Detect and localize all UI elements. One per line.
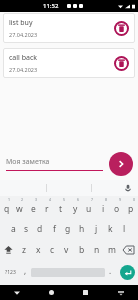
- button[interactable]: Save note: [109, 152, 133, 176]
- staticText: ,: [24, 265, 27, 276]
- button[interactable]: Hide keyboard: [103, 285, 138, 300]
- staticText: l: [123, 223, 126, 235]
- staticText: 8: [105, 197, 108, 202]
- button[interactable]: b: [74, 239, 89, 260]
- button[interactable]: x: [31, 239, 45, 260]
- staticText: Моя заметка: [6, 157, 50, 167]
- button[interactable]: l: [117, 218, 131, 239]
- staticText: 4: [49, 197, 52, 202]
- button[interactable]: Enter: [120, 265, 135, 280]
- button[interactable]: 9: [110, 196, 124, 218]
- button[interactable]: Voice input: [123, 183, 133, 193]
- staticText: r: [45, 203, 49, 215]
- button[interactable]: call back: [3, 48, 135, 78]
- staticText: e: [31, 203, 36, 215]
- staticText: b: [79, 244, 85, 256]
- button[interactable]: Home: [34, 285, 68, 300]
- staticText: 1: [8, 197, 11, 202]
- staticText: 9: [119, 197, 122, 202]
- staticText: p: [128, 203, 134, 215]
- staticText: w: [16, 203, 23, 215]
- staticText: h: [79, 223, 85, 235]
- staticText: y: [73, 203, 78, 215]
- button[interactable]: 6: [68, 196, 82, 218]
- button[interactable]: j: [89, 218, 103, 239]
- staticText: z: [22, 244, 26, 256]
- staticText: 0: [133, 197, 136, 202]
- button[interactable]: 8: [96, 196, 110, 218]
- button[interactable]: n: [89, 239, 104, 260]
- button[interactable]: list buy: [3, 13, 135, 43]
- staticText: k: [108, 223, 113, 235]
- button[interactable]: 0: [124, 196, 138, 218]
- staticText: 7: [91, 197, 94, 202]
- staticText: j: [95, 223, 98, 235]
- staticText: 27.04.2023: [9, 66, 38, 73]
- button[interactable]: z: [17, 239, 31, 260]
- button[interactable]: ,: [20, 260, 31, 285]
- button[interactable]: h: [75, 218, 89, 239]
- button[interactable]: a: [7, 218, 20, 239]
- button[interactable]: k: [103, 218, 117, 239]
- button[interactable]: Backspace: [119, 239, 138, 260]
- staticText: o: [114, 203, 120, 215]
- staticText: a: [11, 223, 16, 235]
- button[interactable]: 4: [40, 196, 54, 218]
- button[interactable]: 3: [26, 196, 40, 218]
- staticText: c: [50, 244, 55, 256]
- staticText: 11:52: [43, 2, 59, 10]
- staticText: list buy: [9, 18, 33, 28]
- button[interactable]: .: [105, 260, 116, 285]
- staticText: n: [94, 244, 100, 256]
- button[interactable]: Back: [0, 285, 34, 300]
- staticText: x: [36, 244, 41, 256]
- button[interactable]: Delete note: [114, 21, 129, 36]
- staticText: s: [24, 223, 29, 235]
- staticText: q: [4, 203, 10, 215]
- button[interactable]: Recent apps: [68, 285, 103, 300]
- staticText: 5: [63, 197, 66, 202]
- staticText: d: [37, 223, 43, 235]
- button[interactable]: s: [20, 218, 33, 239]
- button[interactable]: 2: [13, 196, 26, 218]
- button[interactable]: g: [61, 218, 75, 239]
- button[interactable]: 1: [0, 196, 13, 218]
- staticText: ?123: [5, 269, 16, 276]
- button[interactable]: Моя заметка: [6, 157, 109, 171]
- staticText: f: [53, 223, 56, 235]
- button[interactable]: m: [104, 239, 119, 260]
- staticText: 3: [35, 197, 38, 202]
- button[interactable]: f: [47, 218, 61, 239]
- button[interactable]: v: [59, 239, 74, 260]
- staticText: t: [59, 203, 63, 215]
- staticText: call back: [9, 53, 38, 63]
- staticText: m: [108, 244, 116, 256]
- staticText: v: [64, 244, 69, 256]
- button[interactable]: 7: [82, 196, 96, 218]
- staticText: u: [86, 203, 92, 215]
- staticText: g: [65, 223, 71, 235]
- button[interactable]: Shift: [0, 239, 17, 260]
- staticText: .: [109, 265, 112, 276]
- button[interactable]: d: [33, 218, 47, 239]
- staticText: 27.04.2023: [9, 31, 38, 38]
- button[interactable]: Delete note: [114, 56, 129, 71]
- button[interactable]: c: [45, 239, 59, 260]
- button[interactable]: 5: [54, 196, 68, 218]
- button[interactable]: ?123: [0, 260, 20, 285]
- staticText: 6: [77, 197, 80, 202]
- staticText: 2: [21, 197, 24, 202]
- staticText: i: [102, 203, 105, 215]
